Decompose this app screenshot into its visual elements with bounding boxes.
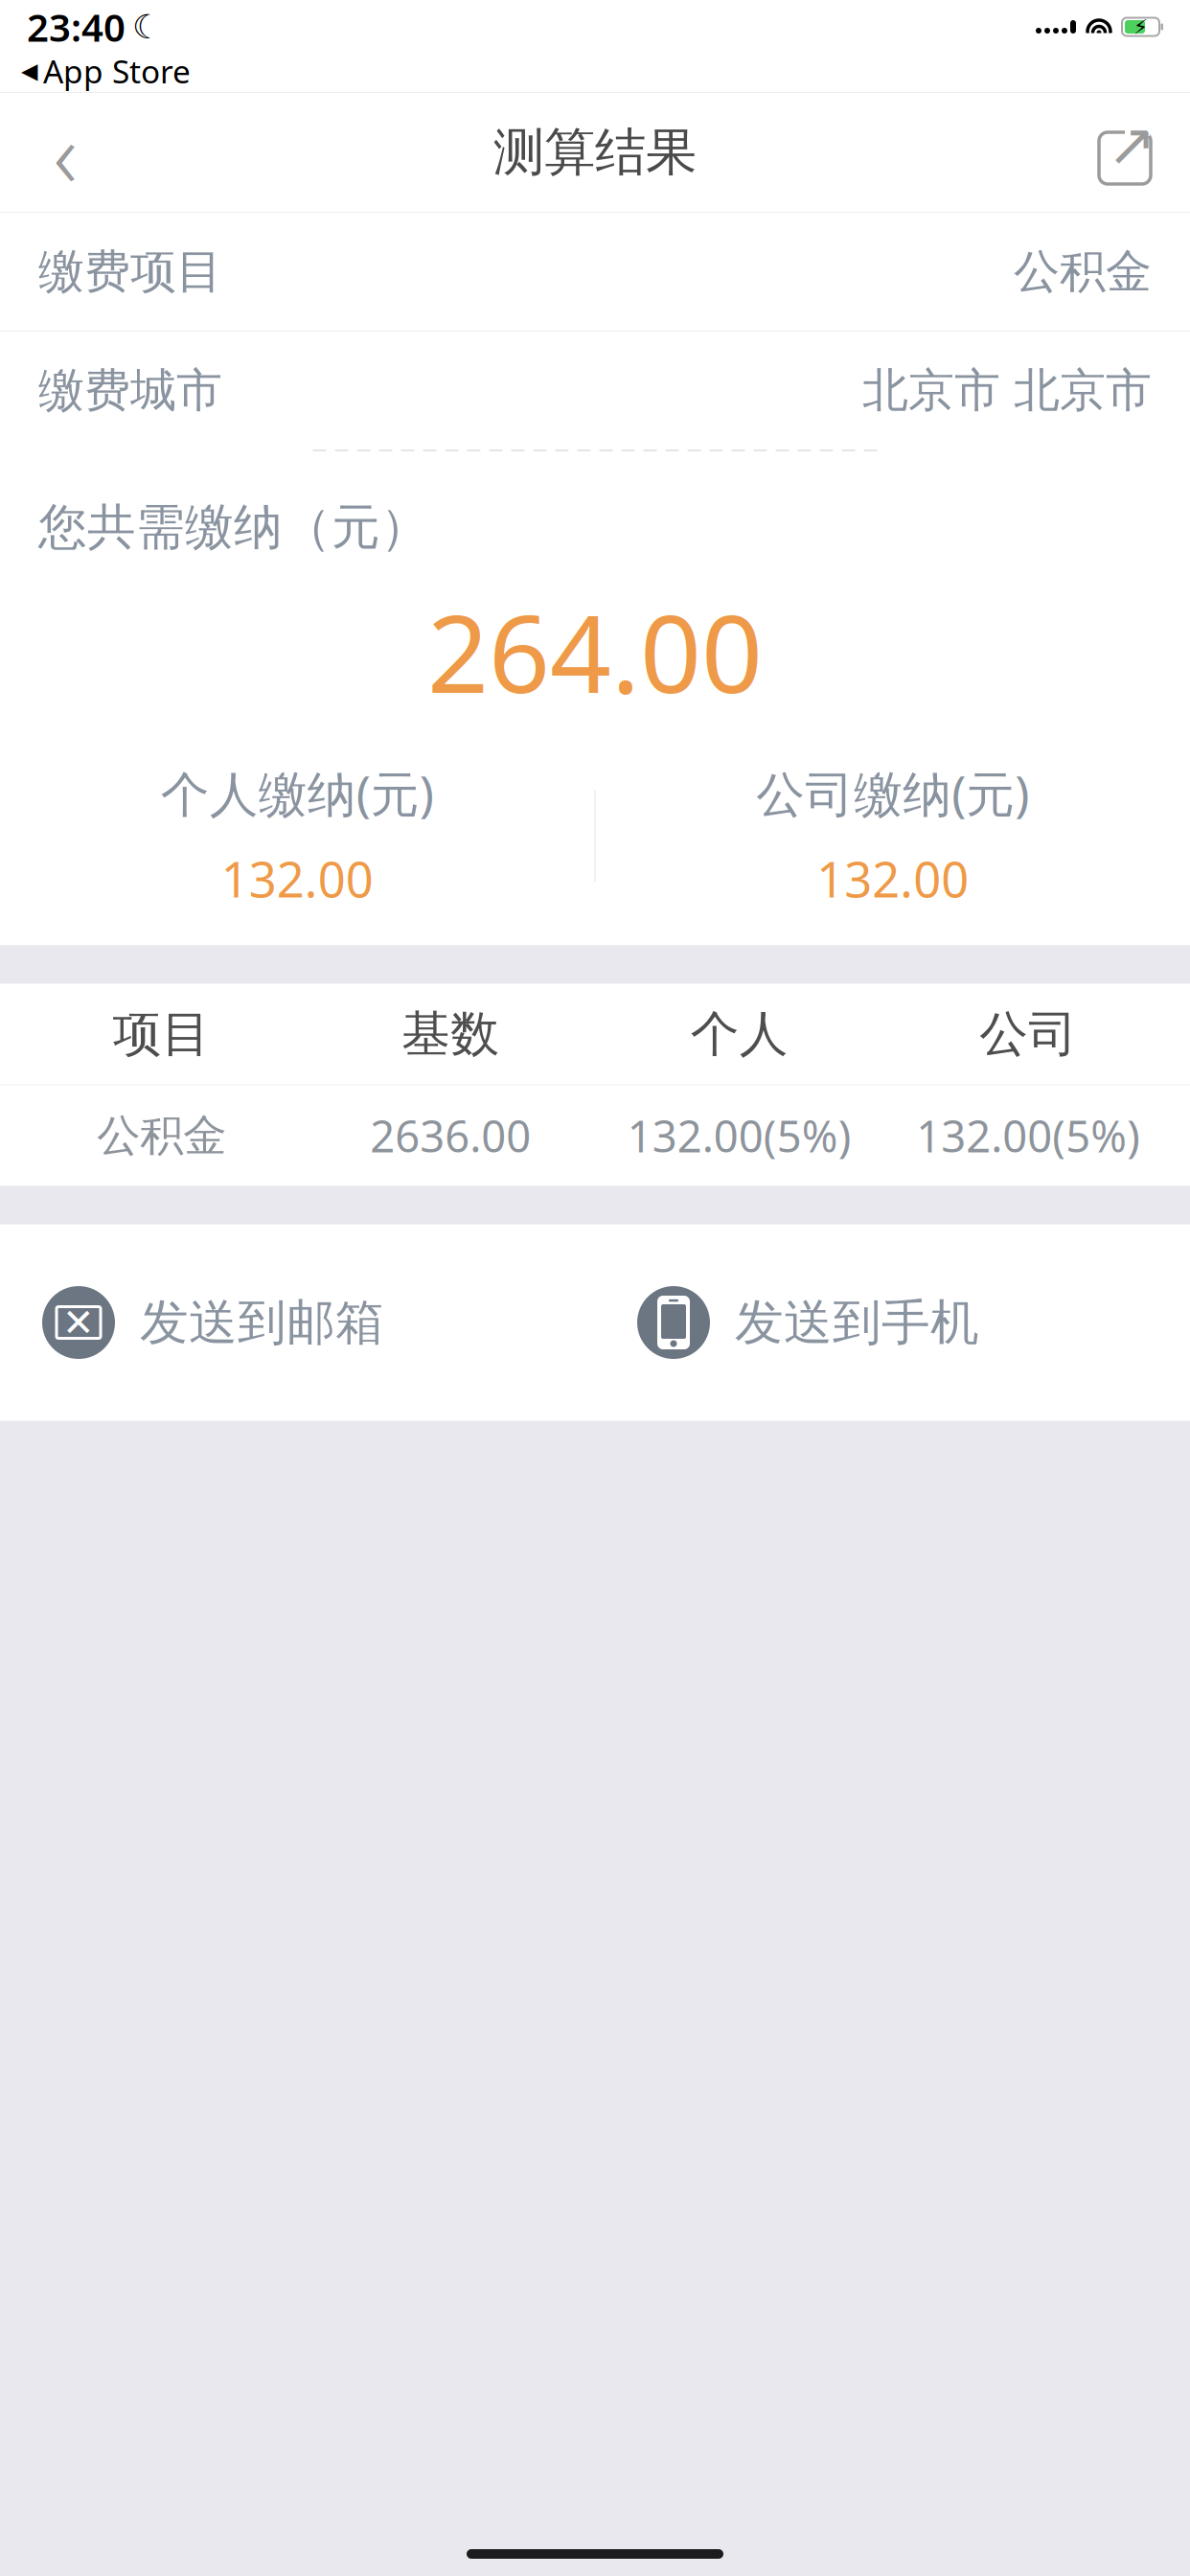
staticText: ⚡︎ bbox=[1133, 15, 1148, 38]
staticText: 您共需缴纳（元） bbox=[38, 497, 429, 557]
staticText: 个人 bbox=[691, 1004, 788, 1064]
staticText: 23:40 bbox=[27, 1, 126, 52]
staticText: 264.00 bbox=[427, 580, 763, 722]
staticText: 132.00(5%) bbox=[916, 1107, 1140, 1164]
staticText: 132.00 bbox=[221, 846, 373, 911]
staticText: 缴费城市 bbox=[38, 362, 222, 419]
staticText: ◀ bbox=[21, 59, 37, 83]
staticText: 公司缴纳(元) bbox=[756, 761, 1029, 825]
staticText: 基数 bbox=[402, 1004, 499, 1064]
button[interactable]: ◀ bbox=[0, 52, 1190, 90]
staticText: 公积金 bbox=[1014, 243, 1152, 300]
staticText: ↗ bbox=[1107, 111, 1156, 178]
button[interactable]: Back bbox=[21, 108, 109, 196]
staticText: 缴费项目 bbox=[38, 243, 222, 300]
staticText: 公司 bbox=[979, 1004, 1077, 1064]
button[interactable]: 发送到手机 bbox=[595, 1224, 1190, 1421]
staticText: 发送到邮箱 bbox=[140, 1293, 384, 1352]
staticText: 公积金 bbox=[97, 1109, 226, 1162]
staticText: ‹ bbox=[53, 91, 77, 214]
staticText: 发送到手机 bbox=[735, 1293, 979, 1352]
staticText: 132.00(5%) bbox=[627, 1107, 852, 1164]
staticText: 测算结果 bbox=[493, 121, 697, 184]
staticText: 132.00 bbox=[817, 846, 969, 911]
staticText: 个人缴纳(元) bbox=[161, 761, 434, 825]
button[interactable]: Share bbox=[1081, 108, 1169, 196]
staticText: App Store bbox=[43, 50, 191, 92]
button[interactable]: ✕ bbox=[0, 1224, 595, 1421]
staticText: 2636.00 bbox=[370, 1107, 531, 1164]
staticText: 项目 bbox=[113, 1004, 211, 1064]
staticText: ✕ bbox=[62, 1301, 95, 1344]
staticText: ☾ bbox=[132, 8, 162, 46]
staticText: 北京市 北京市 bbox=[862, 362, 1152, 419]
